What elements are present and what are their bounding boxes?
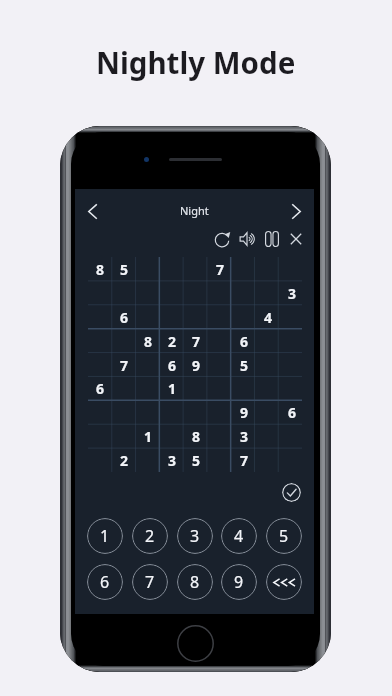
button[interactable]: 1 (160, 376, 184, 400)
button[interactable]: 9 (184, 353, 208, 377)
button[interactable]: 1 (87, 518, 123, 554)
staticText: 6 (120, 308, 129, 327)
button[interactable]: 6 (87, 564, 123, 600)
button[interactable]: 6 (88, 376, 112, 400)
staticText: 6 (240, 332, 249, 351)
staticText: 1 (168, 379, 177, 398)
staticText: 5 (192, 451, 201, 470)
staticText: 2 (168, 332, 177, 351)
button[interactable]: 3 (160, 448, 184, 472)
button[interactable]: Next puzzle (284, 199, 309, 224)
staticText: 3 (240, 427, 249, 446)
staticText: 7 (145, 571, 155, 593)
button[interactable]: 8 (184, 424, 208, 448)
button[interactable]: Previous puzzle (80, 199, 105, 224)
staticText: 3 (190, 525, 200, 547)
staticText: Night (180, 203, 209, 218)
button[interactable]: 6 (232, 329, 256, 353)
staticText: 3 (288, 284, 297, 303)
staticText: 1 (144, 427, 153, 446)
button[interactable]: 7 (208, 257, 232, 281)
staticText: 9 (240, 403, 249, 422)
staticText: 6 (96, 379, 105, 398)
button[interactable]: 6 (112, 305, 136, 329)
staticText: 7 (120, 356, 129, 375)
staticText: 3 (168, 451, 177, 470)
button[interactable]: 8 (88, 257, 112, 281)
staticText: 8 (96, 260, 105, 279)
staticText: 6 (168, 356, 177, 375)
button[interactable]: Check solution (282, 483, 301, 502)
button[interactable]: 6 (160, 353, 184, 377)
staticText: 7 (216, 260, 225, 279)
button[interactable]: 8 (136, 329, 160, 353)
button[interactable]: 2 (160, 329, 184, 353)
button[interactable]: Close (287, 230, 305, 248)
staticText: 5 (240, 356, 249, 375)
button[interactable]: 5 (184, 448, 208, 472)
button[interactable]: Sound (238, 230, 256, 248)
button[interactable]: 2 (132, 518, 168, 554)
button[interactable]: 6 (280, 400, 304, 424)
button[interactable]: 1 (136, 424, 160, 448)
staticText: 5 (279, 525, 289, 547)
button[interactable]: 4 (256, 305, 280, 329)
button[interactable]: 5 (232, 353, 256, 377)
button[interactable]: 7 (112, 353, 136, 377)
button[interactable]: 5 (112, 257, 136, 281)
button[interactable]: 3 (232, 424, 256, 448)
staticText: 6 (100, 571, 110, 593)
button[interactable]: 7 (184, 329, 208, 353)
staticText: 6 (288, 403, 297, 422)
staticText: 2 (120, 451, 129, 470)
staticText: 2 (145, 525, 155, 547)
staticText: 9 (192, 356, 201, 375)
button[interactable]: 7 (132, 564, 168, 600)
button[interactable]: 2 (112, 448, 136, 472)
staticText: 1 (100, 525, 110, 547)
button[interactable]: 7 (232, 448, 256, 472)
staticText: 5 (120, 260, 129, 279)
staticText: Nightly Mode (96, 42, 296, 82)
staticText: 7 (192, 332, 201, 351)
button[interactable]: 3 (177, 518, 213, 554)
button[interactable]: 3 (280, 281, 304, 305)
staticText: 8 (144, 332, 153, 351)
button[interactable]: 8 (177, 564, 213, 600)
staticText: 8 (190, 571, 200, 593)
staticText: 4 (234, 525, 244, 547)
staticText: 9 (234, 571, 244, 593)
button[interactable]: 5 (266, 518, 302, 554)
button[interactable]: Pause (263, 230, 281, 248)
staticText: 8 (192, 427, 201, 446)
button[interactable]: 4 (221, 518, 257, 554)
staticText: 4 (264, 308, 273, 327)
button[interactable]: 9 (221, 564, 257, 600)
staticText: 7 (240, 451, 249, 470)
button[interactable]: 9 (232, 400, 256, 424)
button[interactable]: Restart puzzle (214, 230, 232, 248)
button[interactable] (266, 564, 302, 600)
